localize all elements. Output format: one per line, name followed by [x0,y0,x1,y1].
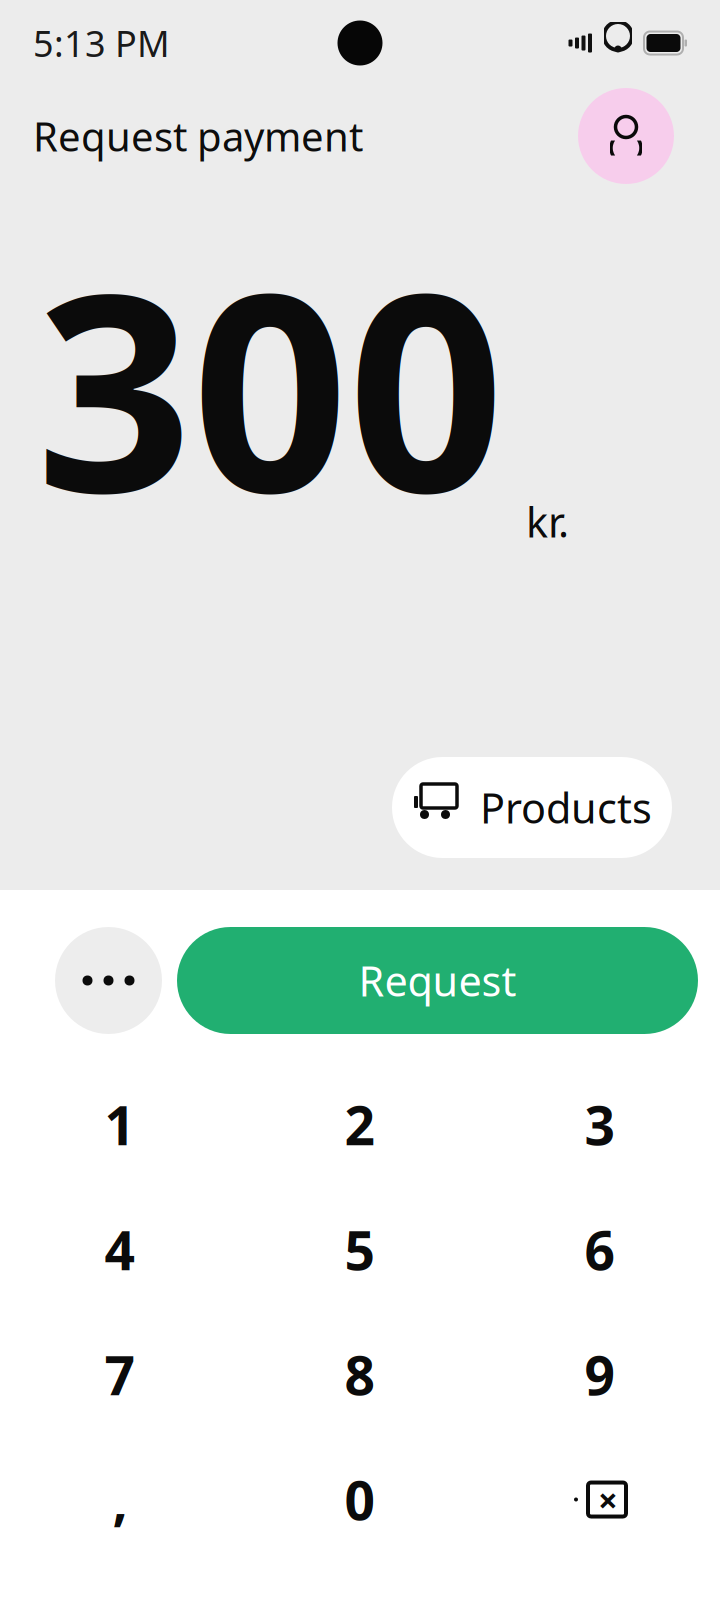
button[interactable]: Delete [480,1437,720,1562]
button[interactable]: 0 [240,1437,480,1562]
button[interactable]: 3 [480,1062,720,1187]
staticText: 2 [344,1089,375,1160]
staticText: 6 [584,1214,615,1285]
staticText: × [598,1476,618,1522]
staticText: 1 [104,1089,135,1160]
button[interactable]: 6 [480,1187,720,1312]
button[interactable]: 4 [0,1187,240,1312]
button[interactable]: Request [177,927,698,1034]
staticText: 8 [344,1339,375,1410]
staticText: 0 [344,1464,375,1535]
button[interactable]: 5 [240,1187,480,1312]
staticText: 9 [584,1339,615,1410]
staticText: 300 [36,204,504,567]
staticText: Request [358,953,516,1008]
staticText: 7 [104,1339,135,1410]
staticText: 4 [104,1214,135,1285]
button[interactable]: 8 [240,1312,480,1437]
button[interactable]: Products [392,757,672,858]
staticText: 3 [584,1089,615,1160]
button[interactable]: 9 [480,1312,720,1437]
button[interactable]: , [0,1437,240,1562]
staticText: 5 [344,1214,375,1285]
staticText: Products [480,780,652,835]
button[interactable]: 2 [240,1062,480,1187]
button[interactable]: 7 [0,1312,240,1437]
staticText: , [112,1464,127,1535]
staticText: Request payment [33,109,363,162]
button[interactable]: Profile [578,88,674,184]
staticText: 5:13 PM [33,19,170,67]
staticText: kr. [526,494,569,549]
button[interactable]: More options [55,927,162,1034]
button[interactable]: 1 [0,1062,240,1187]
